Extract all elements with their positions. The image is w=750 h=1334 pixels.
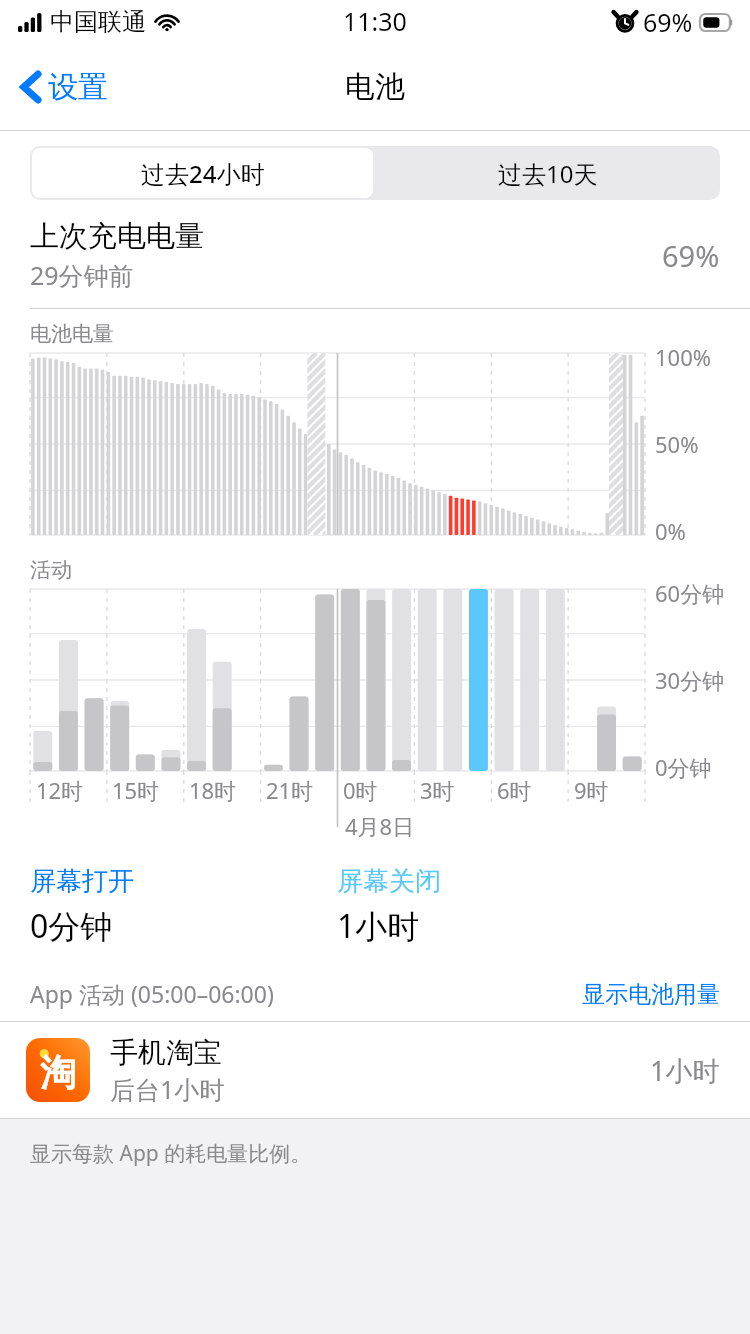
staticText: 0分钟 xyxy=(30,904,113,948)
staticText: 淘 xyxy=(40,1050,76,1095)
staticText: 12时 xyxy=(36,775,84,805)
button[interactable]: 淘 xyxy=(0,1022,750,1118)
button[interactable]: 上次充电电量 xyxy=(0,218,750,308)
staticText: 显示电池用量 xyxy=(582,980,720,1009)
staticText: 0分钟 xyxy=(655,752,712,782)
staticText: 3时 xyxy=(420,775,455,805)
staticText: 29分钟前 xyxy=(30,258,134,292)
staticText: 屏幕关闭 xyxy=(337,865,441,898)
staticText: 0时 xyxy=(343,775,378,805)
staticText: 1小时 xyxy=(337,904,420,948)
staticText: 中国联通 xyxy=(50,7,146,37)
staticText: 屏幕打开 xyxy=(30,865,134,898)
staticText: 显示每款 App 的耗电量比例。 xyxy=(30,1139,312,1168)
staticText: 4月8日 xyxy=(345,811,415,841)
staticText: 18时 xyxy=(189,775,237,805)
staticText: 活动 xyxy=(30,557,72,583)
staticText: 69% xyxy=(662,236,720,275)
staticText: 21时 xyxy=(266,775,314,805)
staticText: 6时 xyxy=(497,775,532,805)
staticText: 50% xyxy=(655,429,699,459)
staticText: 9时 xyxy=(574,775,609,805)
staticText: 15时 xyxy=(112,775,160,805)
staticText: 100% xyxy=(655,342,712,372)
staticText: 手机淘宝 xyxy=(110,1035,222,1070)
staticText: 11:30 xyxy=(343,4,407,38)
staticText: 上次充电电量 xyxy=(30,218,204,255)
button[interactable]: 显示电池用量 xyxy=(582,980,720,1009)
button[interactable]: 设置 xyxy=(14,60,114,114)
staticText: 后台1小时 xyxy=(110,1072,225,1106)
staticText: 0% xyxy=(655,516,686,546)
staticText: 电池电量 xyxy=(30,321,114,347)
staticText: App 活动 (05:00–06:00) xyxy=(30,978,582,1009)
button[interactable]: 过去24小时 xyxy=(32,148,373,198)
staticText: 过去24小时 xyxy=(141,157,265,190)
staticText: 1小时 xyxy=(650,1052,720,1089)
staticText: 过去10天 xyxy=(498,157,598,190)
staticText: 电池 xyxy=(345,68,405,106)
button[interactable]: 过去10天 xyxy=(375,146,720,200)
staticText: 60分钟 xyxy=(655,578,725,608)
staticText: 69% xyxy=(643,5,693,39)
staticText: 设置 xyxy=(48,68,108,106)
staticText: 30分钟 xyxy=(655,665,725,695)
